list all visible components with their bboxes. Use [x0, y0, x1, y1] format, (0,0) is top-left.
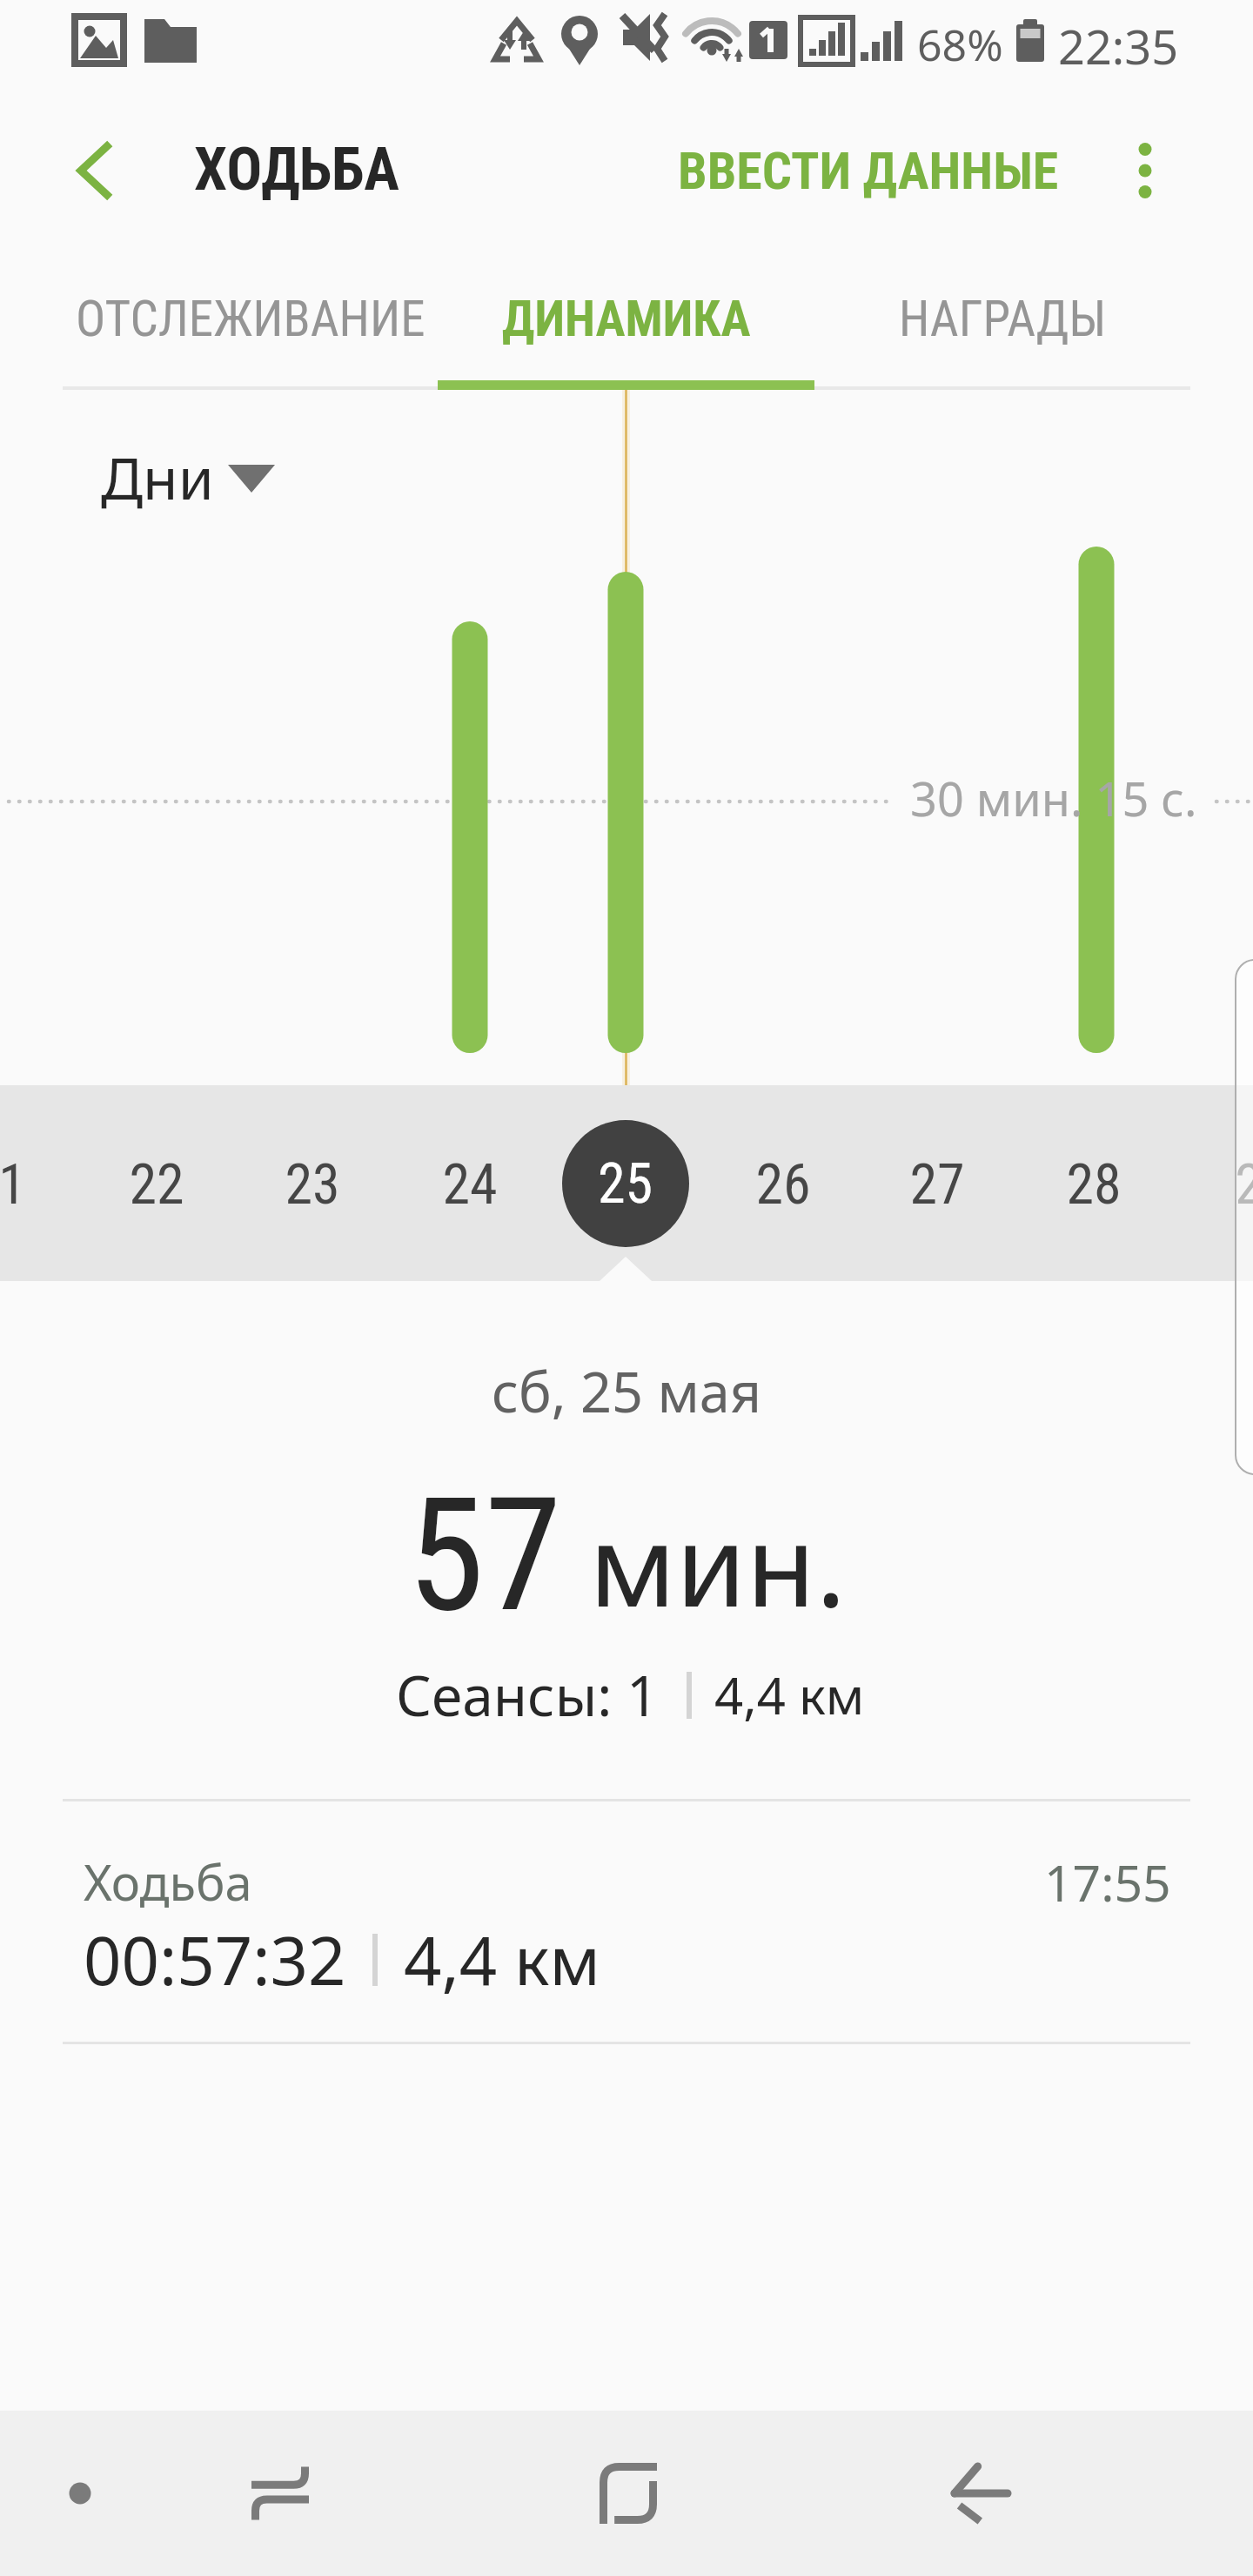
button[interactable]: 23 — [251, 1085, 373, 1281]
staticText: 4,4 км — [404, 1915, 600, 2005]
button[interactable]: 28 — [1033, 1085, 1155, 1281]
button[interactable]: ОТСЛЕЖИВАНИЕ — [63, 237, 439, 390]
staticText: 27 — [909, 1152, 965, 1218]
button[interactable]: 22 — [96, 1085, 218, 1281]
staticText: мин. — [589, 1486, 847, 1640]
staticText: ОТСЛЕЖИВАНИЕ — [76, 290, 425, 348]
staticText: 25 — [598, 1151, 653, 1217]
staticText: 26 — [755, 1152, 811, 1218]
button[interactable]: Back — [918, 2411, 1040, 2576]
button[interactable]: 2 — [1188, 1085, 1253, 1281]
button[interactable]: 25 — [562, 1120, 689, 1247]
staticText: 22 — [129, 1152, 184, 1218]
button[interactable]: Recent apps — [219, 2411, 341, 2576]
staticText: 22:35 — [1058, 14, 1179, 78]
staticText: Дни — [101, 438, 214, 516]
button[interactable]: 24 — [409, 1085, 531, 1281]
button[interactable]: 26 — [722, 1085, 844, 1281]
button[interactable]: Дни — [80, 435, 296, 534]
button[interactable]: 27 — [876, 1085, 998, 1281]
staticText: ХОДЬБА — [194, 135, 399, 205]
button[interactable]: НАГРАДЫ — [814, 237, 1190, 390]
button[interactable]: 1 — [0, 1085, 73, 1281]
staticText: 4,4 км — [714, 1660, 865, 1729]
staticText: 68% — [917, 15, 1003, 74]
staticText: 00:57:32 — [84, 1915, 346, 2005]
staticText: НАГРАДЫ — [899, 290, 1107, 348]
staticText: Ходьба — [84, 1848, 252, 1915]
button[interactable]: More options — [1091, 104, 1199, 237]
staticText: ВВЕСТИ ДАННЫЕ — [678, 140, 1059, 201]
staticText: 24 — [442, 1152, 498, 1218]
staticText: 28 — [1066, 1152, 1122, 1218]
button[interactable]: Home — [567, 2411, 689, 2576]
button[interactable]: Keyboard indicator — [37, 2411, 124, 2576]
staticText: 30 мин. 15 с. — [910, 766, 1197, 830]
staticText: 1 — [0, 1152, 26, 1218]
button[interactable]: ВВЕСТИ ДАННЫЕ — [653, 104, 1083, 237]
button[interactable]: Back — [37, 104, 151, 237]
staticText: 17:55 — [1044, 1848, 1171, 1916]
staticText: 23 — [285, 1152, 340, 1218]
staticText: Сеансы: 1 — [396, 1657, 659, 1733]
staticText: ДИНАМИКА — [502, 290, 751, 348]
staticText: сб, 25 мая — [492, 1354, 762, 1429]
staticText: 57 — [407, 1464, 562, 1647]
button[interactable]: Ходьба — [63, 1801, 1190, 2005]
button[interactable]: ДИНАМИКА — [439, 237, 814, 390]
staticText: 2 — [1235, 1152, 1253, 1218]
